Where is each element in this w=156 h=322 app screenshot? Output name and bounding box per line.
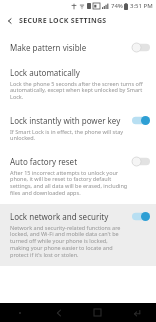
staticText: SECURE LOCK SETTINGS bbox=[19, 16, 107, 26]
staticText: Lock network and security bbox=[10, 211, 109, 222]
button[interactable]: Home bbox=[117, 303, 156, 322]
button[interactable]: Lock automatically bbox=[0, 60, 156, 108]
button[interactable]: Back bbox=[4, 15, 16, 27]
button[interactable]: Lock instantly with power key bbox=[0, 108, 156, 149]
staticText: Make pattern visible bbox=[10, 42, 87, 53]
staticText: Lock instantly with power key bbox=[10, 115, 121, 126]
button[interactable]: Lock network and security toggle bbox=[132, 212, 150, 221]
staticText: If Smart Lock is in effect, the phone wi… bbox=[10, 128, 128, 142]
button[interactable]: Lock instantly with power key toggle bbox=[132, 116, 150, 125]
button[interactable]: Lock network and security bbox=[0, 204, 156, 266]
button[interactable]: Auto factory reset bbox=[0, 149, 156, 204]
staticText: Auto factory reset bbox=[10, 156, 78, 167]
button[interactable]: Auto factory reset toggle bbox=[132, 157, 150, 166]
button[interactable]: Make pattern visible toggle bbox=[132, 43, 150, 52]
button[interactable]: Make pattern visible bbox=[0, 35, 156, 60]
staticText: Network and security-related functions a… bbox=[10, 224, 128, 259]
staticText: 3:51 PM bbox=[130, 2, 153, 10]
button[interactable]: Back bbox=[39, 303, 78, 322]
staticText: 74% bbox=[111, 2, 123, 10]
staticText: After 15 incorrect attempts to unlock yo… bbox=[10, 169, 128, 197]
button[interactable]: Recents bbox=[78, 303, 117, 322]
staticText: Lock the phone 5 seconds after the scree… bbox=[10, 80, 146, 101]
staticText: Lock automatically bbox=[10, 67, 80, 78]
